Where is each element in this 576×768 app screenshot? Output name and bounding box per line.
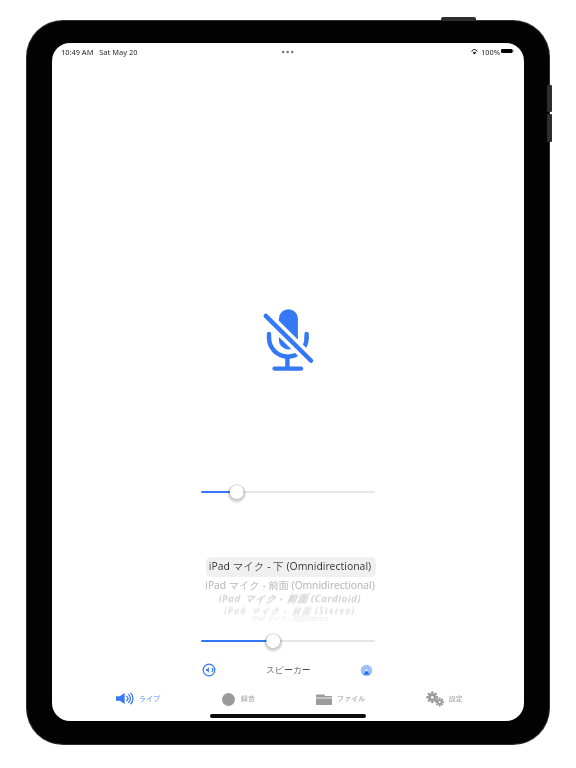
button[interactable]: 録音 xyxy=(218,688,260,710)
staticText: iPad マイク - 前面 (Stereo) xyxy=(180,604,400,615)
staticText: ファイル xyxy=(337,694,366,703)
staticText: 録音 xyxy=(241,694,255,703)
staticText: 100% xyxy=(481,47,500,57)
button[interactable]: ファイル xyxy=(314,688,368,710)
staticText: 設定 xyxy=(449,694,463,703)
button[interactable]: AirPlay xyxy=(359,663,374,678)
button[interactable] xyxy=(192,482,384,502)
staticText: iPad マイク - 前面 (Cardioid) xyxy=(180,591,400,604)
staticText: iPad マイク - 前面 (Cardioid) xyxy=(180,593,400,606)
staticText: iPad マイク - 前面 (Cardioid) xyxy=(180,592,400,605)
staticText: iPad マイク - 前面 (Stereo) xyxy=(180,614,400,623)
staticText: スピーカー xyxy=(266,665,311,676)
staticText: iPad マイク - 下 (Omnidirectional) xyxy=(180,559,400,573)
staticText: ライブ xyxy=(139,694,161,703)
button[interactable]: Microphone muted xyxy=(263,303,315,375)
staticText: iPad マイク - 前面 (Stereo) xyxy=(180,605,400,616)
button[interactable]: ライブ xyxy=(112,688,162,710)
button[interactable]: 設定 xyxy=(424,688,468,710)
staticText: iPad マイク - 前面 (Stereo) xyxy=(180,606,400,617)
button[interactable] xyxy=(206,557,376,577)
staticText: 10:49 AM Sat May 20 xyxy=(61,47,138,57)
staticText: iPad マイク - 前面 (Omnidirectional) xyxy=(180,578,400,592)
button[interactable] xyxy=(192,631,384,651)
button[interactable]: Volume xyxy=(201,662,217,678)
